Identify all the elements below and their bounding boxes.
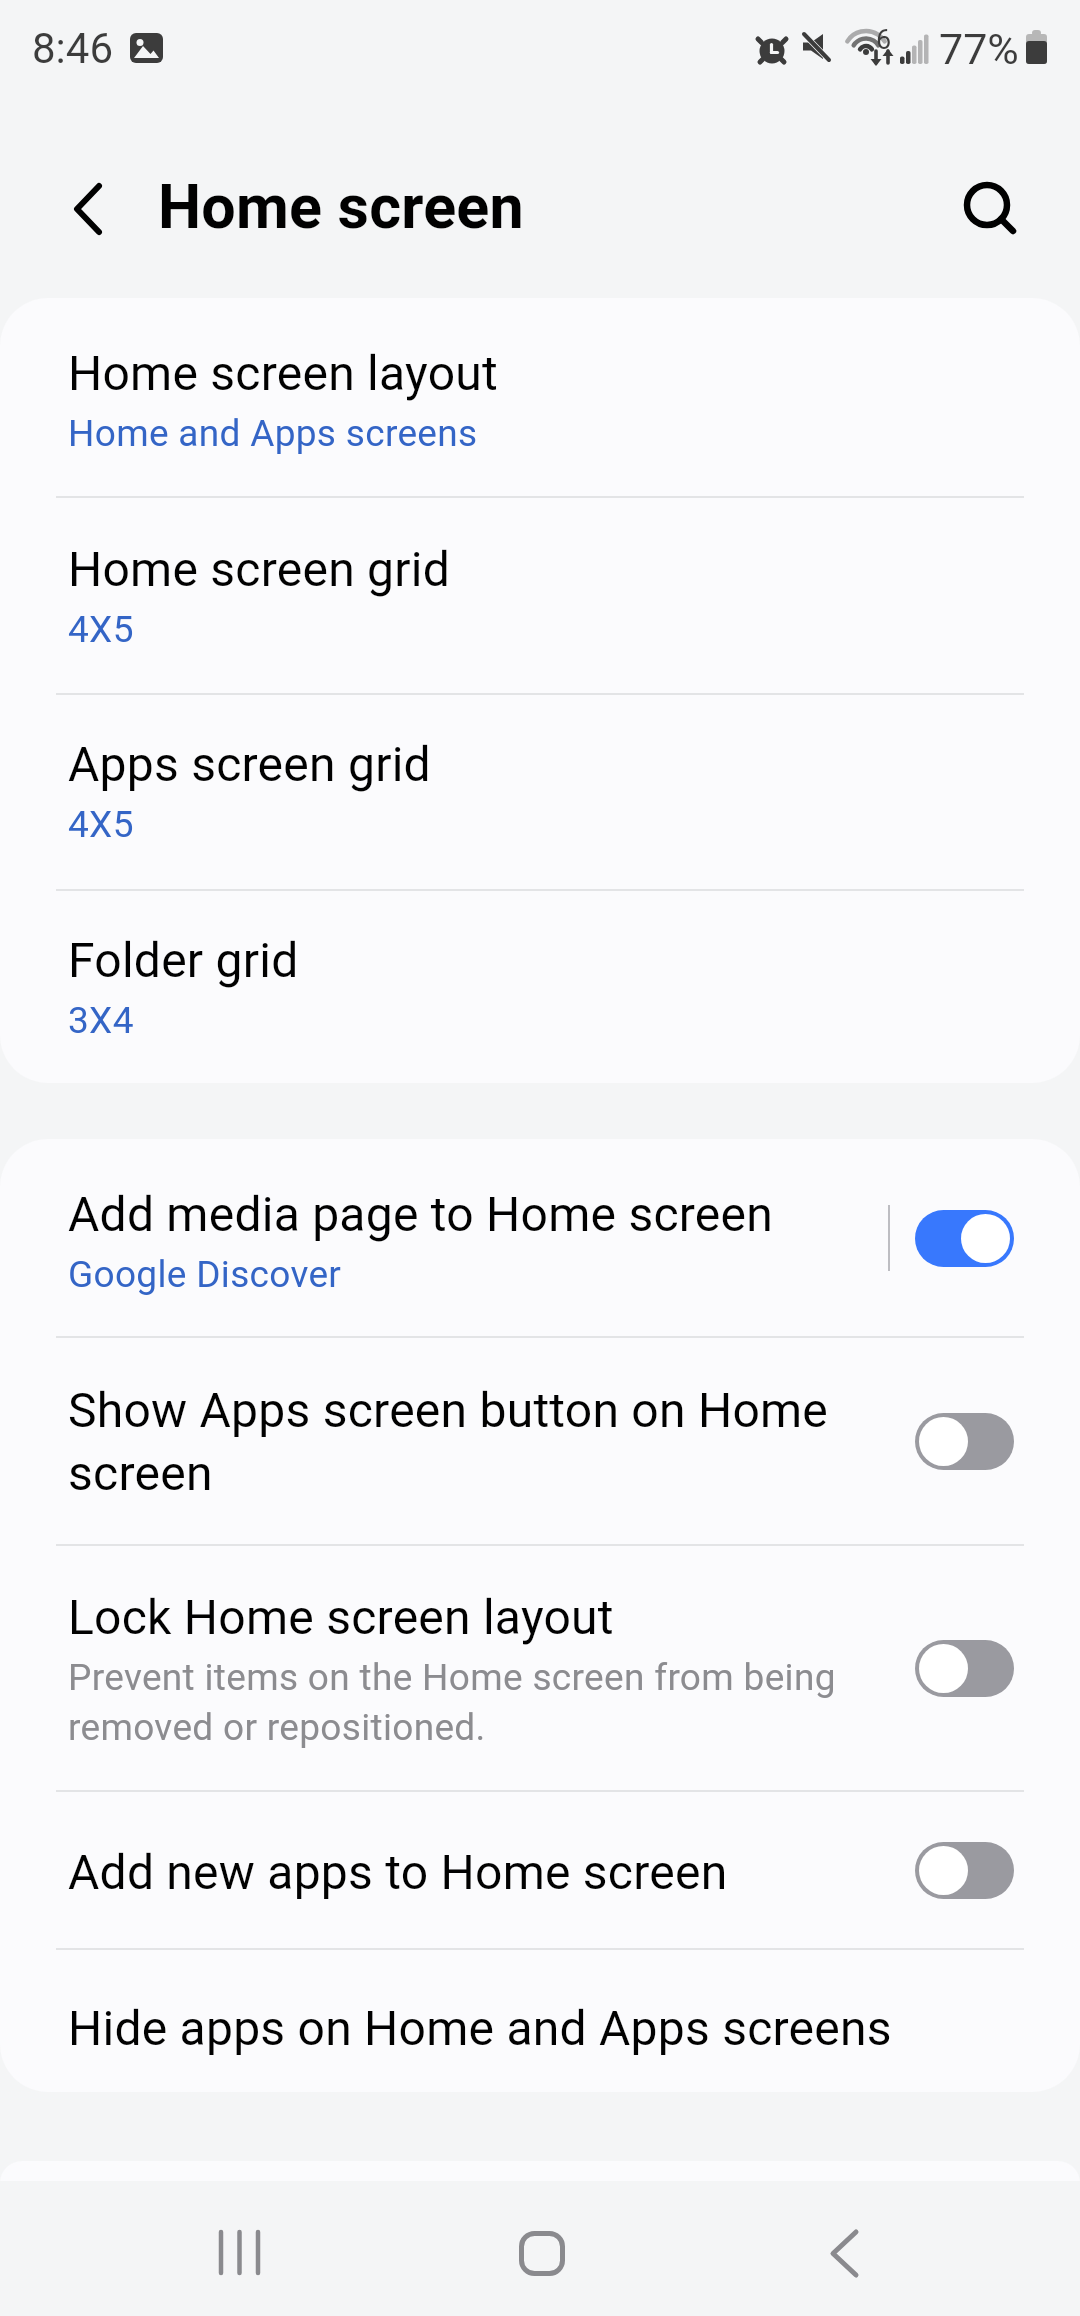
staticText: 4X5 <box>68 803 134 846</box>
button[interactable]: Folder grid <box>0 889 1080 1083</box>
button[interactable]: Home <box>480 2201 600 2301</box>
button[interactable]: Apps screen grid <box>0 693 1080 889</box>
button[interactable]: Home screen grid <box>0 496 1080 693</box>
button[interactable]: On <box>915 1210 1014 1267</box>
button[interactable]: Home screen layout <box>0 298 1080 496</box>
staticText: Apps screen grid <box>68 736 431 792</box>
button[interactable]: Off <box>915 1842 1014 1899</box>
staticText: 4X5 <box>68 608 134 651</box>
button[interactable]: Add new apps to Home screen <box>0 1791 1080 1949</box>
staticText: 77% <box>939 24 1019 74</box>
staticText: 6 <box>876 24 892 56</box>
staticText: Home screen layout <box>68 345 498 401</box>
button[interactable]: Lock Home screen layout <box>0 1545 1080 1791</box>
button[interactable]: Off <box>915 1413 1014 1470</box>
staticText: Home screen grid <box>68 541 451 597</box>
staticText: Folder grid <box>68 932 299 988</box>
staticText: Hide apps on Home and Apps screens <box>68 2000 892 2056</box>
staticText: Lock Home screen layout <box>68 1589 614 1645</box>
button[interactable]: Recent apps <box>180 2201 300 2301</box>
staticText: Home screen <box>158 171 524 242</box>
button[interactable]: Add media page to Home screen <box>0 1139 1080 1337</box>
button[interactable]: Back <box>785 2201 905 2301</box>
staticText: Google Discover <box>68 1253 342 1296</box>
staticText: Prevent items on the Home screen from be… <box>68 1656 885 1749</box>
staticText: 8:46 <box>32 24 113 73</box>
staticText: Add new apps to Home screen <box>68 1844 728 1900</box>
button[interactable]: Hide apps on Home and Apps screens <box>0 1949 1080 2092</box>
button[interactable]: Off <box>915 1640 1014 1697</box>
staticText: Home and Apps screens <box>68 412 478 455</box>
staticText: 3X4 <box>68 999 134 1042</box>
button[interactable]: Search <box>940 155 1040 263</box>
staticText: Show Apps screen button on Home screen <box>68 1382 885 1502</box>
button[interactable]: Show Apps screen button on Home screen <box>0 1337 1080 1545</box>
staticText: Add media page to Home screen <box>68 1186 774 1242</box>
button[interactable]: Navigate up <box>43 155 133 263</box>
